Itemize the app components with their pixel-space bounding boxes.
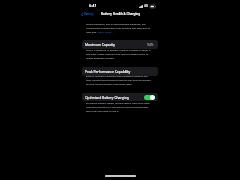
staticText: Battery Health & Charging bbox=[101, 12, 141, 16]
staticText: 6:41 bbox=[89, 3, 97, 8]
button[interactable]: Optimized Battery Charging bbox=[82, 93, 158, 101]
staticText: Phone batteries, like all rechargeable b… bbox=[86, 22, 152, 34]
button[interactable]: Maximum Capacity bbox=[82, 40, 158, 49]
staticText: Peak Performance Capability bbox=[85, 69, 131, 74]
staticText: Optimized Battery Charging bbox=[85, 95, 129, 100]
button[interactable]: Optimized Battery Charging, on bbox=[144, 95, 155, 100]
staticText: This is a measure of battery capacity re… bbox=[86, 48, 152, 60]
button[interactable]: Battery bbox=[80, 11, 95, 17]
staticText: 94% bbox=[147, 42, 154, 47]
staticText: Maximum Capacity bbox=[85, 42, 116, 47]
staticText: Built-in dynamic software and hardware s… bbox=[86, 74, 152, 86]
button[interactable]: Peak Performance Capability bbox=[82, 67, 158, 76]
staticText: 4G bbox=[144, 4, 149, 8]
staticText: Battery bbox=[84, 12, 94, 16]
staticText: To reduce battery aging, iPhone learns f… bbox=[86, 101, 152, 113]
